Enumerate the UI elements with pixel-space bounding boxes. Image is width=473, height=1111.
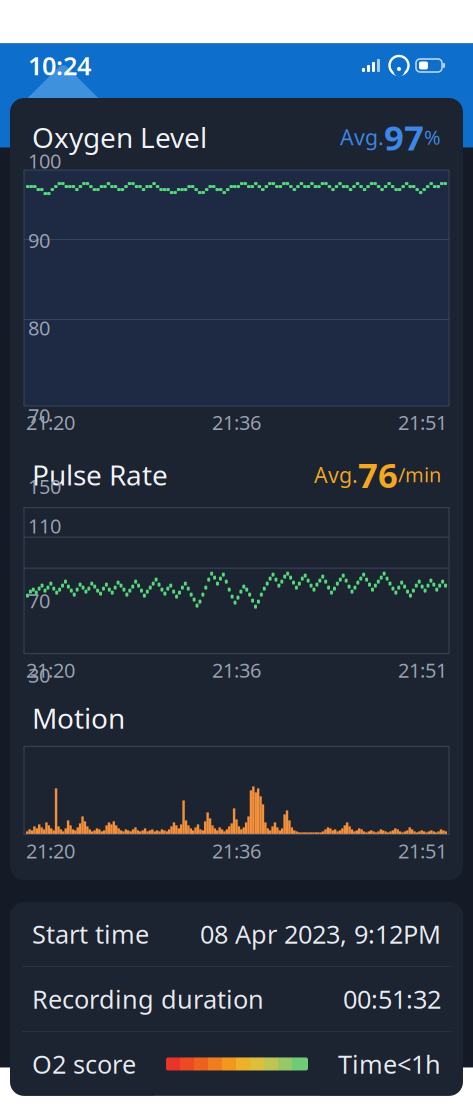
staticText: 21:51 [398,409,447,436]
staticText: Start time [32,917,149,951]
staticText: 150 [28,473,61,500]
staticText: 10:24 [28,49,91,82]
staticText: 21:36 [212,657,261,683]
staticText: % [424,124,441,150]
staticText: /min [398,461,441,488]
staticText: Time<1h [338,1047,441,1081]
staticText: Avg. [314,460,358,489]
staticText: 21:20 [26,409,75,436]
staticText: 97 [384,114,424,160]
button[interactable]: Back [8,91,52,135]
staticText: 21:20 [26,837,75,864]
button[interactable]: Help [375,91,415,135]
staticText: 70 [28,402,50,429]
staticText: 110 [28,513,61,539]
staticText: Oxygen Level [32,118,207,156]
button[interactable]: Share [415,91,459,135]
staticText: Motion [32,699,125,736]
staticText: 00:51:32 [343,982,441,1016]
staticText: Details [157,91,269,136]
staticText: 21:36 [212,837,261,864]
staticText: 21:51 [398,657,447,683]
staticText: 30 [28,662,50,688]
staticText: 08 Apr 2023, 9:12PM [200,917,441,951]
staticText: 21:20 [26,657,75,683]
staticText: O2 score [32,1047,136,1081]
staticText: Pulse Rate [32,456,168,493]
staticText: Recording duration [32,982,264,1016]
staticText: 90 [28,227,50,254]
staticText: Avg. [340,123,384,151]
staticText: 21:51 [398,837,447,864]
staticText: 70 [28,587,50,614]
staticText: 76 [358,452,398,498]
staticText: ? [390,98,400,128]
staticText: 80 [28,314,50,341]
staticText: 21:36 [212,409,261,436]
staticText: 100 [28,147,61,174]
